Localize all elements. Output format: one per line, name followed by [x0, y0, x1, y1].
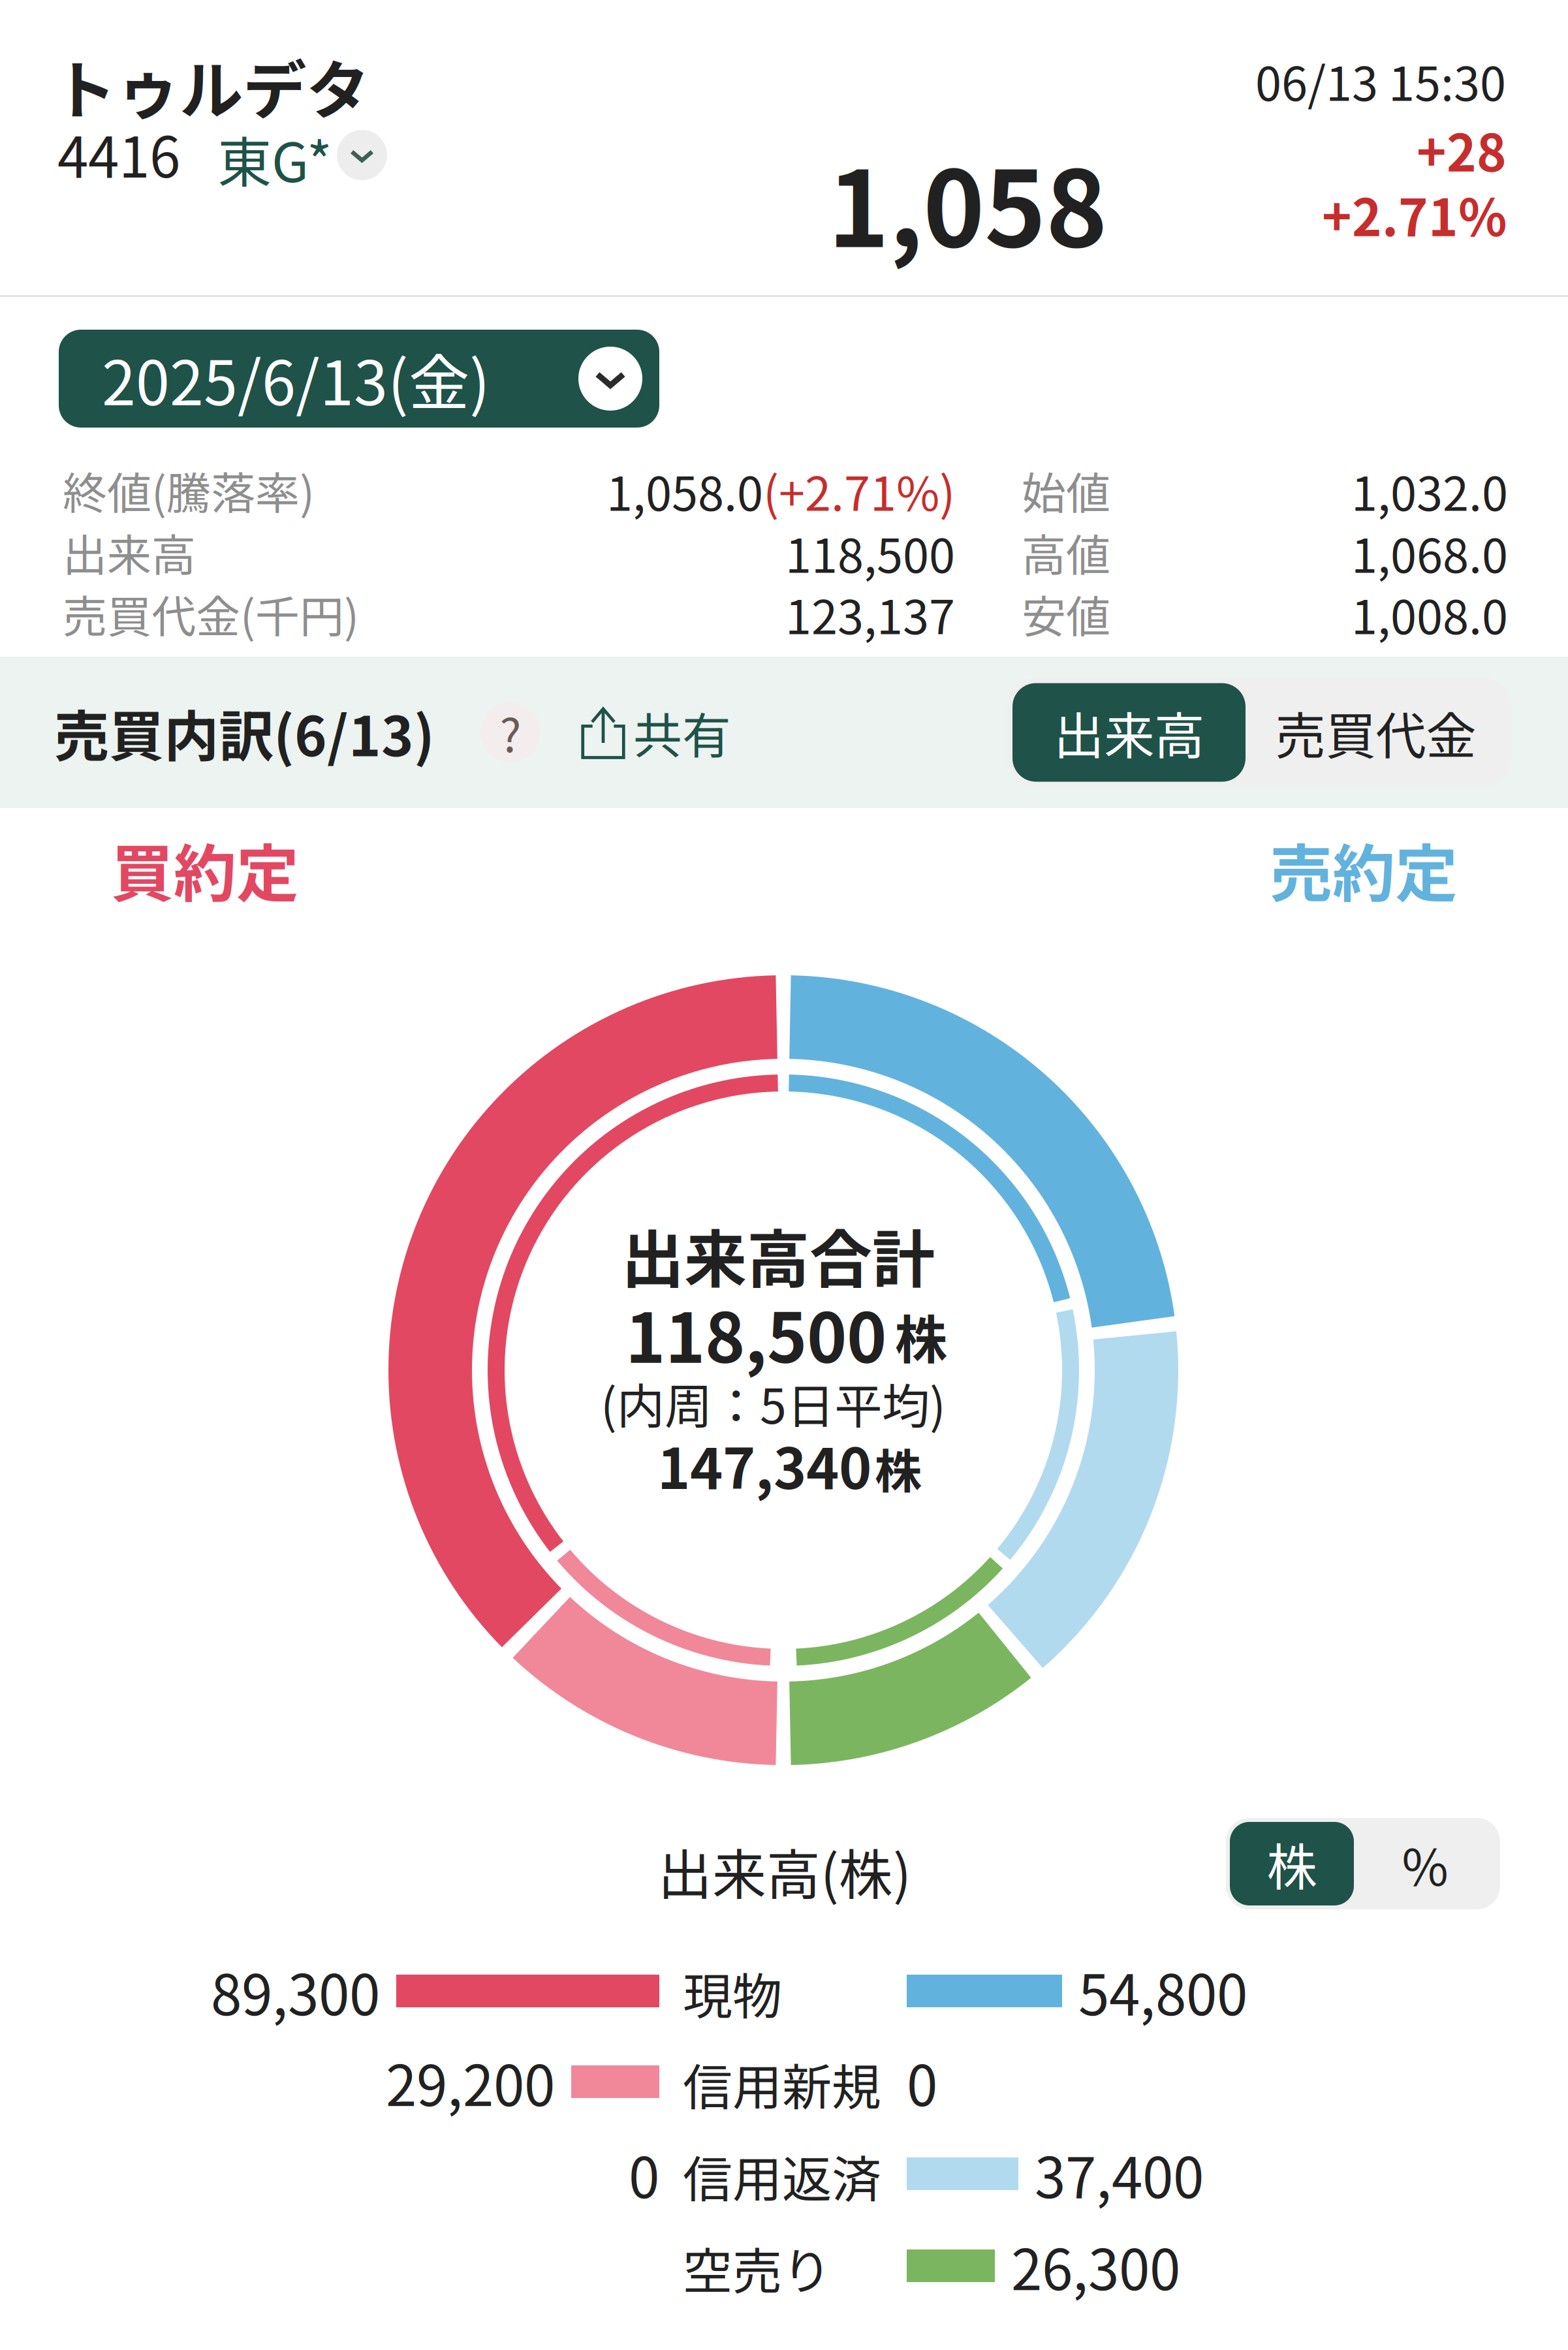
staticText: 1,058 [828, 126, 1107, 277]
staticText: 始値 [1022, 458, 1110, 522]
staticText: 売買代金 [1275, 696, 1476, 769]
button[interactable]: 共有 [581, 697, 731, 768]
button[interactable]: % [1354, 1822, 1496, 1905]
staticText: (内周：5日平均) [601, 1368, 946, 1438]
staticText: 89,300 [211, 1951, 380, 2031]
staticText: 現物 [683, 1957, 782, 2029]
staticText: トゥルデタ [53, 40, 369, 132]
staticText: 安値 [1022, 582, 1110, 646]
staticText: 出来高合計 [621, 1210, 935, 1300]
button[interactable]: 出来高 [1012, 683, 1246, 782]
staticText: +2.71% [1322, 178, 1507, 251]
button[interactable]: 株 [1230, 1822, 1354, 1905]
staticText: 1,058.0 [606, 456, 763, 524]
staticText: 株 [875, 1434, 922, 1502]
button[interactable]: Help [480, 700, 541, 765]
staticText: 147,340 [657, 1424, 871, 1505]
staticText: 共有 [633, 697, 731, 768]
staticText: 終値(騰落率) [63, 458, 315, 522]
button[interactable]: 2025/6/13(金) [59, 330, 659, 428]
staticText: 出来高(株) [658, 1832, 911, 1910]
staticText: 37,400 [1035, 2133, 1204, 2214]
staticText: 1,068.0 [1351, 518, 1508, 586]
staticText: 123,137 [785, 580, 955, 648]
staticText: 売約定 [1270, 824, 1458, 915]
staticText: 信用新規 [683, 2048, 881, 2120]
staticText: 売買内訳(6/13) [54, 693, 435, 772]
staticText: 0 [629, 2133, 659, 2214]
staticText: 26,300 [1011, 2225, 1180, 2306]
staticText: 株 [1267, 1827, 1317, 1900]
staticText: 買約定 [111, 824, 299, 915]
staticText: 54,800 [1078, 1951, 1247, 2031]
staticText: 0 [907, 2041, 937, 2122]
staticText: ? [500, 700, 521, 765]
staticText: 出来高 [1054, 696, 1204, 769]
staticText: 株 [895, 1298, 947, 1374]
staticText: 東G* [217, 119, 332, 198]
staticText: 29,200 [386, 2041, 555, 2122]
staticText: 1,008.0 [1351, 580, 1508, 648]
staticText: 空売り [683, 2232, 832, 2304]
staticText: 1,032.0 [1351, 456, 1508, 524]
staticText: 出来高 [63, 520, 196, 584]
staticText: (+2.71%) [763, 456, 955, 524]
staticText: 4416 [57, 113, 180, 194]
staticText: 118,500 [785, 518, 955, 586]
button[interactable]: Change market [337, 130, 387, 180]
staticText: 2025/6/13(金) [102, 334, 490, 423]
staticText: 信用返済 [683, 2140, 881, 2212]
staticText: 高値 [1022, 520, 1110, 584]
staticText: % [1402, 1827, 1448, 1900]
staticText: 売買代金(千円) [63, 582, 359, 646]
button[interactable]: 売買代金 [1246, 683, 1506, 782]
staticText: +28 [1417, 113, 1507, 186]
staticText: 118,500 [625, 1284, 886, 1382]
staticText: 06/13 15:30 [1255, 46, 1506, 114]
